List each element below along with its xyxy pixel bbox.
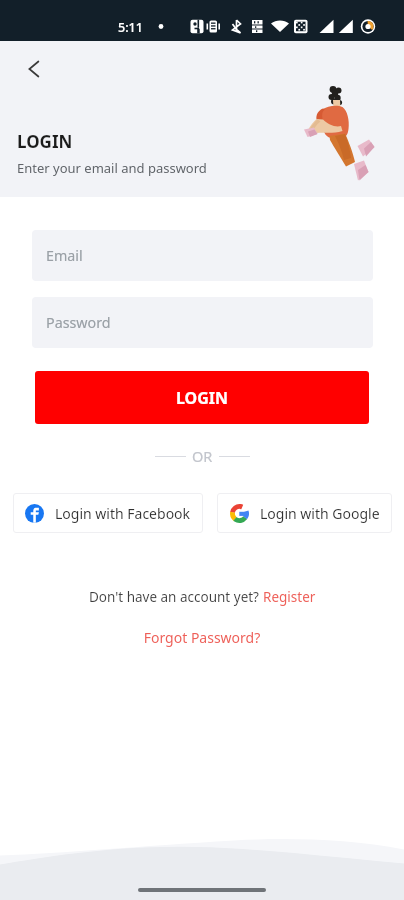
staticText: Don't have an account yet? — [89, 588, 263, 606]
button[interactable]: Password — [32, 297, 373, 348]
staticText: 5:11 — [118, 19, 143, 36]
button[interactable]: Login with Facebook — [13, 493, 203, 533]
button[interactable]: Back — [21, 56, 47, 82]
staticText: LOGIN — [176, 387, 229, 409]
staticText: Login with Facebook — [55, 504, 191, 523]
staticText: Login with Google — [260, 504, 380, 523]
button[interactable]: Register — [263, 588, 316, 606]
button[interactable]: Forgot Password? — [0, 628, 404, 647]
button[interactable]: Login with Google — [217, 493, 392, 533]
staticText: Password — [46, 313, 111, 332]
staticText: OR — [192, 446, 213, 466]
staticText: Enter your email and password — [17, 159, 207, 177]
staticText: Email — [46, 246, 83, 265]
staticText: LOGIN — [17, 130, 73, 153]
button[interactable]: LOGIN — [35, 371, 369, 424]
button[interactable]: Email — [32, 230, 373, 281]
